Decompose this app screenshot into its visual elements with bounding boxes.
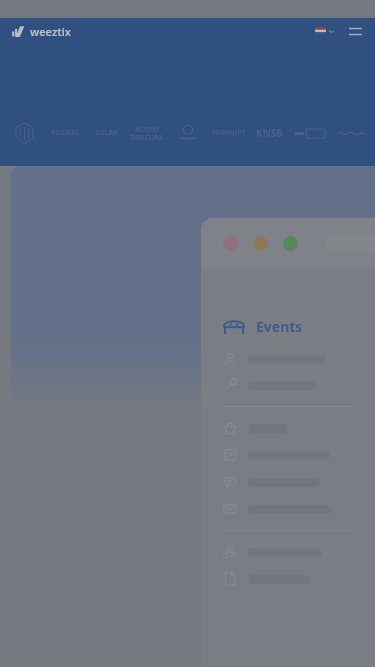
- button[interactable]: [223, 544, 322, 560]
- button[interactable]: Open menu: [345, 21, 365, 41]
- button[interactable]: [223, 474, 320, 490]
- button[interactable]: [223, 447, 330, 463]
- button[interactable]: weeztix: [10, 22, 73, 41]
- staticText: KOENIG: [51, 128, 79, 138]
- button[interactable]: Change language: [312, 24, 337, 38]
- staticText: weeztix: [30, 24, 71, 39]
- button[interactable]: [223, 351, 326, 367]
- button[interactable]: [223, 377, 316, 393]
- staticText: KNSB: [256, 126, 283, 140]
- button[interactable]: [223, 571, 310, 587]
- staticText: SOLAR: [95, 128, 118, 138]
- button[interactable]: [223, 501, 332, 517]
- staticText: AUDIO OBSCURA: [130, 125, 164, 142]
- staticText: Events: [256, 317, 303, 336]
- button[interactable]: [223, 420, 288, 436]
- staticText: VERKNIPT: [211, 128, 246, 138]
- button[interactable]: Events: [223, 315, 303, 338]
